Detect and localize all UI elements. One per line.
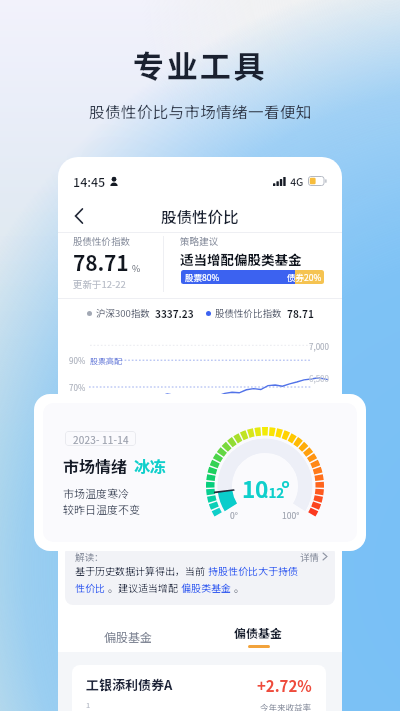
staticText: 适当增配偏股类基金 <box>180 249 302 269</box>
staticText: 10 <box>242 472 268 505</box>
staticText: 沪深300指数 <box>96 306 150 320</box>
button[interactable]: 2023- 11-14 <box>43 403 357 542</box>
staticText: ° <box>281 472 291 505</box>
staticText: 解读： <box>75 550 104 564</box>
staticText: 股票高配 <box>90 355 122 367</box>
staticText: 股债性价比与市场情绪一看便知 <box>89 100 312 122</box>
staticText: 今年来收益率 <box>260 701 312 711</box>
staticText: 冰冻 <box>134 454 167 477</box>
staticText: 1 <box>86 699 91 710</box>
staticText: 7,000 <box>309 341 329 353</box>
staticText: +2.72% <box>257 675 312 697</box>
button[interactable]: 工银添利债券A <box>72 665 326 711</box>
staticText: 基于历史数据计算得出，当前 <box>75 563 208 577</box>
staticText: 2023- 11-14 <box>73 432 129 446</box>
button[interactable]: Back <box>64 201 94 231</box>
button[interactable]: 偏债基金 <box>213 620 303 652</box>
staticText: 市场情绪 <box>63 454 128 477</box>
staticText: 0° <box>230 509 238 521</box>
staticText: 持股性价比大于持债 <box>208 563 298 577</box>
staticText: 股票80% <box>185 271 220 283</box>
staticText: 专业工具 <box>133 42 267 87</box>
staticText: .12 <box>264 482 285 502</box>
staticText: 偏股基金 <box>104 628 153 645</box>
staticText: 性价比 <box>75 580 108 594</box>
staticText: 工银添利债券A <box>86 675 173 694</box>
staticText: 。 <box>234 580 244 594</box>
staticText: 策略建议 <box>180 234 219 248</box>
staticText: 股债性价比 <box>161 205 239 227</box>
staticText: 4G <box>290 174 304 189</box>
staticText: 78.71 <box>73 247 129 277</box>
staticText: 更新于12-22 <box>73 277 126 291</box>
staticText: 70% <box>69 382 86 394</box>
staticText: 较昨日温度不变 <box>63 501 140 517</box>
staticText: 偏股类基金 <box>181 580 234 594</box>
button[interactable]: 偏股基金 <box>83 620 173 652</box>
staticText: % <box>132 262 141 275</box>
staticText: 。建议适当增配 <box>108 580 181 594</box>
staticText: 详情 <box>300 550 320 564</box>
staticText: 14:45 <box>73 172 106 190</box>
staticText: 债券20% <box>287 271 322 283</box>
staticText: 90% <box>69 355 86 367</box>
staticText: 3337.23 <box>155 306 194 320</box>
button[interactable]: 解读： <box>65 545 335 605</box>
staticText: 6,500 <box>309 373 329 385</box>
staticText: 100° <box>282 509 300 521</box>
staticText: 78.71 <box>287 306 314 320</box>
staticText: 股债性价指数 <box>73 234 131 248</box>
staticText: 偏债基金 <box>234 624 283 641</box>
staticText: 市场温度寒冷 <box>63 485 129 501</box>
staticText: 股债性价比指数 <box>215 306 282 320</box>
